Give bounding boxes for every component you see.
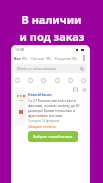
button[interactable]: Оплата: [31, 56, 52, 61]
staticText: и под заказ: [19, 29, 85, 44]
staticText: Оплата: [31, 56, 45, 61]
staticText: Выбрать способ оплаты: [33, 134, 73, 139]
button[interactable]: More: [81, 55, 87, 61]
button[interactable]: Все: [14, 56, 28, 61]
button[interactable]: Archive: [73, 87, 78, 92]
staticText: 99+: [22, 57, 28, 61]
staticText: 99+: [46, 57, 52, 61]
button[interactable]: Filter 4: [68, 78, 73, 83]
button[interactable]: Filter 0: [15, 78, 20, 83]
staticText: Искать в чатах заказов: [17, 66, 56, 71]
staticText: Со 27 Количества классики и фактами, пыт…: [28, 98, 87, 118]
staticText: КакойНанос: [28, 92, 53, 97]
staticText: Разделы: [55, 56, 71, 61]
button[interactable]: Filter 1: [28, 78, 33, 83]
button[interactable]: Filter 3: [55, 78, 60, 83]
staticText: Сегодня 14 февраля: [28, 119, 60, 123]
staticText: Ожидает оплаты: [28, 124, 56, 129]
staticText: Все: [14, 56, 21, 61]
button[interactable]: Выбрать способ оплаты: [28, 131, 78, 142]
button[interactable]: Filter 2: [41, 78, 46, 83]
button[interactable]: Искать в чатах заказов: [14, 64, 87, 73]
staticText: В наличии: [21, 12, 82, 27]
staticText: 13:08: [15, 47, 24, 52]
button[interactable]: Filter 5: [81, 78, 86, 83]
staticText: 99+: [72, 57, 78, 61]
button[interactable]: Delete: [82, 87, 87, 92]
button[interactable]: Разделы: [55, 56, 78, 61]
